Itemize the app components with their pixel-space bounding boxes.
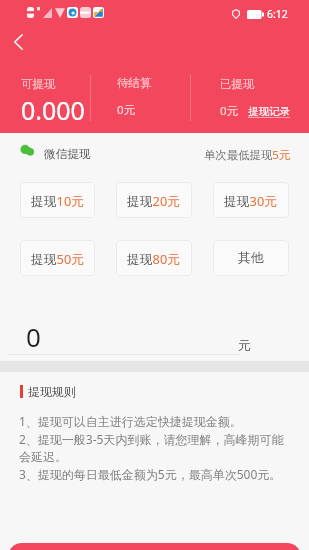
staticText: 0.000 xyxy=(21,93,85,127)
staticText: 单次最低提现5元 xyxy=(204,147,291,163)
button[interactable]: 提现20元 xyxy=(116,182,192,218)
staticText: 提现记录 xyxy=(248,105,290,118)
staticText: 元 xyxy=(238,337,251,353)
button[interactable]: 其他 xyxy=(213,240,289,276)
staticText: 提现规则 xyxy=(28,384,76,399)
staticText: 已提现 xyxy=(220,77,255,91)
button[interactable]: Back xyxy=(5,28,32,55)
button[interactable]: 提现80元 xyxy=(116,240,192,276)
staticText: 提现10元 xyxy=(31,192,85,209)
staticText: 0元 xyxy=(117,102,136,118)
staticText: 0元 xyxy=(220,103,239,119)
staticText: 微信提现 xyxy=(44,147,91,162)
button[interactable]: 提现50元 xyxy=(20,240,95,276)
button[interactable]: 提现记录 xyxy=(248,105,290,118)
staticText: 提现50元 xyxy=(31,250,85,267)
staticText: 提现20元 xyxy=(127,192,181,209)
staticText: 6:12 xyxy=(267,7,288,21)
staticText: 待结算 xyxy=(117,76,152,90)
staticText: 1、提现可以自主进行选定快捷提现金额。 2、提现一般3-5天内到账，请您理解，高… xyxy=(19,413,287,482)
button[interactable]: 提现10元 xyxy=(20,182,95,218)
button[interactable]: 确认提现 xyxy=(8,543,301,550)
staticText: 可提现 xyxy=(21,77,56,91)
button[interactable]: 提现30元 xyxy=(213,182,289,218)
staticText: 提现30元 xyxy=(224,192,278,209)
staticText: 其他 xyxy=(238,250,264,266)
staticText: 0 xyxy=(26,319,41,354)
staticText: 提现80元 xyxy=(127,250,181,267)
